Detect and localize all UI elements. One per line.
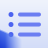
- button[interactable]: Item 2: [0, 19, 48, 29]
- button[interactable]: Item 3: [0, 29, 48, 39]
- button[interactable]: Item 1: [0, 9, 48, 19]
